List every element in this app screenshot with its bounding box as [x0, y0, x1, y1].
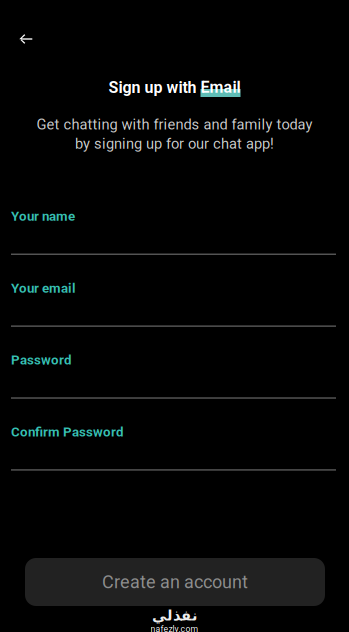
staticText: Your email — [11, 280, 76, 296]
staticText: Your name — [11, 208, 75, 224]
staticText: by signing up for our chat app! — [75, 135, 274, 152]
staticText: Password — [11, 352, 72, 368]
staticText: Confirm Password — [11, 424, 124, 440]
staticText: Get chatting with friends and family tod… — [36, 116, 312, 133]
button[interactable]: Create an account — [25, 558, 325, 606]
staticText: Email — [200, 78, 240, 97]
staticText: nafezly.com — [150, 624, 198, 632]
staticText: نفذلي — [151, 607, 197, 624]
staticText: Create an account — [102, 571, 248, 593]
staticText: Sign up with — [108, 78, 200, 97]
button[interactable]: Back — [8, 21, 44, 57]
